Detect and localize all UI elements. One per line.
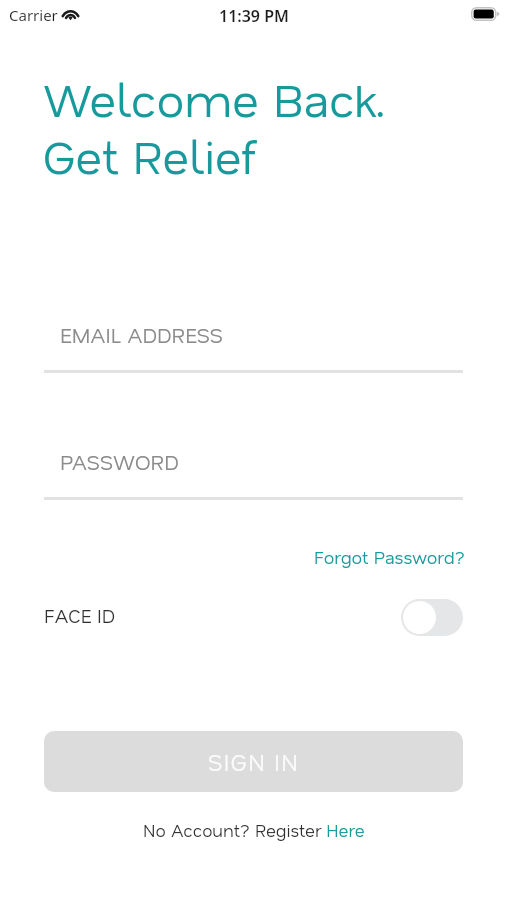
staticText: FACE ID: [44, 603, 116, 628]
button[interactable]: No Account? Register Here: [140, 816, 368, 844]
staticText: 11:39 PM: [219, 5, 289, 27]
button[interactable]: Forgot Password?: [314, 542, 507, 571]
staticText: Welcome Back. Get Relief: [43, 68, 386, 186]
staticText: Carrier: [9, 5, 58, 25]
staticText: PASSWORD: [60, 448, 179, 475]
staticText: EMAIL ADDRESS: [60, 321, 223, 348]
button[interactable]: Face ID toggle: [401, 599, 463, 636]
staticText: SIGN IN: [208, 747, 300, 777]
button[interactable]: SIGN IN: [44, 731, 463, 792]
